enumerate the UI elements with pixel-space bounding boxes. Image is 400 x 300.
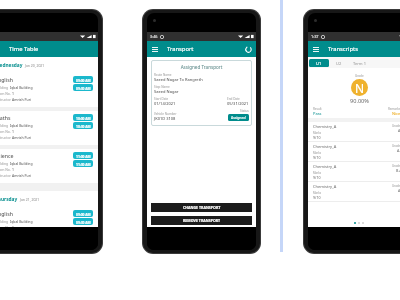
staticText: Amrish Puri [12, 97, 31, 102]
staticText: Assigned [231, 115, 246, 120]
staticText: 10:00 AM [76, 116, 91, 120]
staticText: 9/10 [313, 175, 321, 180]
staticText: Building [0, 161, 10, 166]
staticText: Result [313, 107, 322, 111]
staticText: Grade [392, 184, 400, 188]
staticText: A- [397, 148, 400, 153]
staticText: A [398, 188, 400, 193]
staticText: Chemistry_A [313, 124, 337, 129]
button[interactable]: Chemistry_A [308, 182, 400, 202]
button[interactable]: Maths [0, 111, 98, 145]
staticText: Instructor [0, 97, 12, 102]
staticText: 09:00 AM [76, 212, 91, 216]
button[interactable]: Menu [151, 45, 159, 53]
staticText: Vehicle Number [154, 112, 177, 116]
staticText: Instructor [0, 135, 12, 140]
staticText: Grade [392, 144, 400, 148]
staticText: Stop Name [154, 85, 170, 89]
staticText: Room No. [0, 91, 12, 96]
staticText: 10:30 AM [76, 124, 91, 128]
staticText: 09:00 AM [76, 78, 91, 82]
staticText: Chemistry_A [313, 144, 337, 149]
staticText: A [398, 128, 400, 133]
staticText: Marks [313, 131, 322, 135]
staticText: 1 [12, 129, 14, 134]
staticText: Marks [313, 171, 322, 175]
staticText: Remarks [388, 107, 400, 111]
button[interactable]: English [0, 207, 98, 227]
staticText: U2 [336, 61, 342, 66]
staticText: Transport [167, 45, 194, 53]
button[interactable]: Menu [312, 45, 320, 53]
staticText: 9/10 [313, 195, 321, 200]
staticText: Thursday [0, 196, 18, 203]
staticText: End Date [227, 97, 240, 101]
button[interactable]: English [0, 73, 98, 107]
staticText: B+ [396, 168, 400, 173]
staticText: Iqbal Building [10, 219, 33, 224]
button[interactable]: Refresh [244, 45, 252, 53]
staticText: JK01D 3108 [154, 116, 176, 121]
staticText: Saeed Nagar [154, 89, 179, 94]
staticText: Maths [0, 114, 11, 121]
staticText: Room No. [0, 167, 12, 172]
staticText: 11:00 AM [76, 154, 91, 158]
staticText: Building [0, 85, 10, 90]
staticText: Pass [313, 111, 322, 116]
staticText: U1 [316, 61, 322, 66]
staticText: 1 [12, 225, 14, 227]
staticText: REMOVE TRANSPORT [183, 218, 221, 223]
staticText: 9/10 [313, 155, 321, 160]
staticText: Time Table [9, 45, 39, 53]
button[interactable]: Chemistry_A [308, 142, 400, 162]
button[interactable]: Chemistry_A [308, 122, 400, 142]
button[interactable]: REMOVE TRANSPORT [151, 216, 252, 225]
button[interactable]: U1 [309, 59, 329, 67]
staticText: Transcripts [328, 45, 358, 53]
staticText: Status [240, 109, 249, 113]
staticText: Assigned Transport [154, 64, 249, 70]
staticText: Jan 21, 2021 [20, 197, 40, 202]
staticText: Marks [313, 151, 322, 155]
staticText: Iqbal Building [10, 85, 33, 90]
staticText: Amrish Puri [12, 135, 31, 140]
staticText: English [0, 210, 13, 217]
staticText: Building [0, 123, 10, 128]
staticText: 1 [12, 91, 14, 96]
staticText: Science [0, 152, 14, 159]
staticText: Saeed Nagar To Rangreth [154, 77, 203, 82]
staticText: Grade [392, 124, 400, 128]
staticText: N [355, 80, 365, 96]
staticText: 1 [12, 167, 14, 172]
staticText: Chemistry_A [313, 164, 337, 169]
staticText: Route Name [154, 73, 172, 77]
staticText: Iqbal Building [10, 123, 33, 128]
staticText: 09:30 AM [76, 86, 91, 90]
staticText: Marks [313, 191, 322, 195]
staticText: 05/31/2021 [227, 101, 249, 106]
staticText: 90.00% [350, 97, 369, 105]
staticText: Instructor [0, 173, 12, 178]
button[interactable]: Term 1 [349, 59, 369, 67]
staticText: 11:30 AM [76, 162, 91, 166]
staticText: English [0, 76, 13, 83]
staticText: Room No. [0, 225, 12, 227]
staticText: 01/14/2021 [154, 101, 176, 106]
button[interactable]: Science [0, 149, 98, 183]
staticText: Amrish Puri [12, 173, 31, 178]
staticText: Wednesday [0, 62, 23, 69]
staticText: Nice [392, 111, 400, 116]
staticText: 09:30 AM [76, 220, 91, 224]
button[interactable]: U2 [329, 59, 349, 67]
staticText: Grade [355, 74, 364, 78]
staticText: 3:46 [150, 34, 158, 39]
staticText: Building [0, 219, 10, 224]
staticText: Jan 20, 2021 [25, 63, 45, 68]
button[interactable]: Chemistry_A [308, 162, 400, 182]
staticText: Grade [392, 164, 400, 168]
staticText: Iqbal Building [10, 161, 33, 166]
button[interactable]: CHANGE TRANSPORT [151, 203, 252, 212]
staticText: 1:37 [311, 34, 319, 39]
staticText: Term 1 [353, 61, 366, 66]
staticText: Start Date [154, 97, 169, 101]
